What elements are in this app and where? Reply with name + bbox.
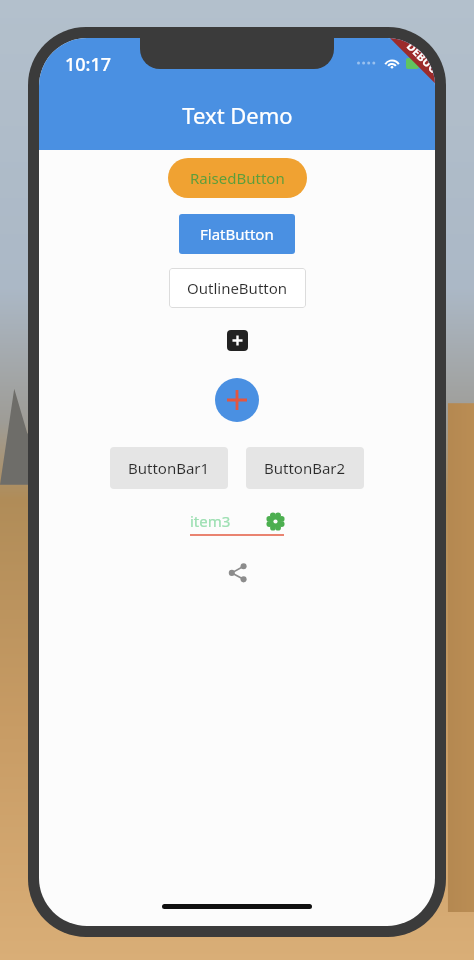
button[interactable]: OutlineButton	[169, 268, 306, 308]
staticText: FlatButton	[200, 224, 274, 244]
staticText: ButtonBar1	[128, 458, 210, 478]
button[interactable]: FlatButton	[179, 214, 295, 254]
staticText: item3	[190, 511, 231, 531]
staticText: RaisedButton	[190, 168, 285, 188]
button[interactable]: Add	[227, 330, 248, 351]
button[interactable]: Add	[215, 378, 259, 422]
staticText: Text Demo	[182, 100, 293, 130]
button[interactable]: Share	[223, 558, 251, 586]
button[interactable]: item3	[190, 511, 284, 536]
button[interactable]: ButtonBar1	[110, 447, 228, 489]
staticText: DEBUG	[404, 39, 435, 76]
staticText: ButtonBar2	[264, 458, 346, 478]
button[interactable]: ButtonBar2	[246, 447, 364, 489]
staticText: OutlineButton	[187, 278, 288, 298]
staticText: 10:17	[65, 52, 112, 77]
button[interactable]: RaisedButton	[168, 158, 307, 198]
